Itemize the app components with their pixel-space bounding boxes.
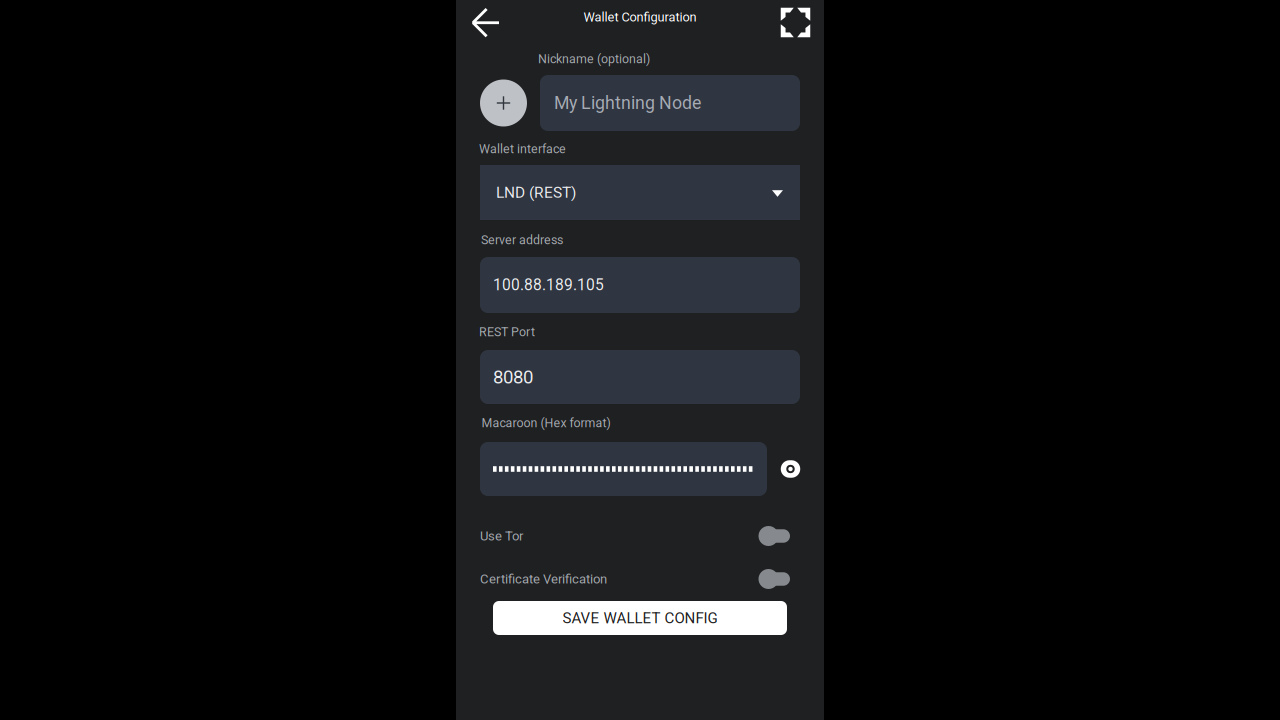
staticText: 8080 bbox=[493, 366, 533, 388]
staticText: 100.88.189.105 bbox=[493, 276, 604, 294]
button[interactable]: My Lightning Node bbox=[540, 75, 800, 131]
staticText: Wallet interface bbox=[479, 142, 566, 156]
button[interactable]: Back bbox=[463, 1, 507, 45]
staticText: Nickname (optional) bbox=[538, 52, 650, 66]
button[interactable]: 8080 bbox=[480, 350, 800, 404]
staticText: My Lightning Node bbox=[554, 93, 701, 113]
button[interactable]: Show macaroon bbox=[773, 452, 807, 486]
button[interactable]: Add wallet bbox=[480, 79, 527, 126]
staticText: Certificate Verification bbox=[480, 571, 607, 587]
staticText: Wallet Configuration bbox=[583, 9, 696, 24]
button[interactable]: Certificate Verification bbox=[480, 565, 790, 593]
button[interactable]: SAVE WALLET CONFIG bbox=[493, 601, 787, 635]
staticText: Server address bbox=[481, 233, 563, 247]
staticText: SAVE WALLET CONFIG bbox=[562, 609, 717, 627]
staticText: REST Port bbox=[479, 325, 535, 339]
staticText: Use Tor bbox=[480, 528, 523, 544]
button[interactable]: Use Tor bbox=[480, 522, 790, 550]
staticText: Macaroon (Hex format) bbox=[481, 416, 610, 430]
button[interactable]: Expand bbox=[773, 0, 817, 44]
button[interactable]: Macaroon bbox=[480, 442, 767, 496]
button[interactable]: 100.88.189.105 bbox=[480, 257, 800, 313]
staticText: LND (REST) bbox=[496, 183, 576, 201]
button[interactable]: LND (REST) bbox=[480, 165, 800, 220]
